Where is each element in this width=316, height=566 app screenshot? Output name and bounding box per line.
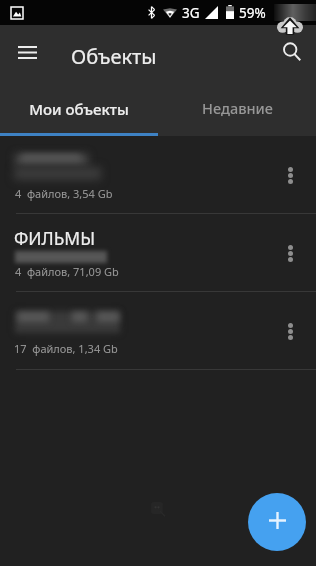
button[interactable]: 4 файлов, 3,54 Gb [0, 136, 316, 213]
staticText: Объекты [71, 43, 157, 70]
button[interactable]: Search [272, 32, 312, 72]
staticText: Недавние [202, 98, 273, 118]
staticText: 4 файлов, 3,54 Gb [15, 186, 113, 201]
button[interactable]: More options [270, 233, 310, 273]
staticText: Мои объекты [29, 99, 129, 119]
button[interactable]: Upload [277, 17, 303, 34]
button[interactable]: Недавние [158, 84, 316, 136]
button[interactable]: More options [270, 155, 310, 195]
staticText: 3G [182, 4, 200, 22]
staticText: 59% [239, 4, 266, 22]
button[interactable]: ФИЛЬМЫ [0, 214, 316, 291]
staticText: 17 файлов, 1,34 Gb [14, 341, 118, 356]
button[interactable]: 17 файлов, 1,34 Gb [0, 292, 316, 369]
button[interactable]: Мои объекты [0, 84, 158, 136]
button[interactable]: Menu [8, 35, 44, 71]
staticText: ФИЛЬМЫ [14, 226, 96, 250]
staticText: 4 файлов, 71,09 Gb [15, 264, 119, 279]
button[interactable]: More options [270, 311, 310, 351]
button[interactable]: Add [248, 493, 306, 551]
